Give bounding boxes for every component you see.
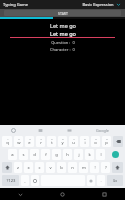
staticText: . xyxy=(100,178,102,184)
staticText: u xyxy=(72,140,75,146)
staticText: n xyxy=(71,165,74,171)
button[interactable]: ! xyxy=(90,162,99,173)
staticText: f xyxy=(45,152,47,158)
button[interactable]: Shift xyxy=(2,162,12,173)
button[interactable]: j xyxy=(74,149,83,160)
button[interactable]: 0 xyxy=(102,136,111,147)
staticText: 0 xyxy=(106,137,108,140)
button[interactable]: Google xyxy=(84,125,121,135)
button[interactable]: Basic Expression xyxy=(81,2,122,7)
button[interactable]: v xyxy=(46,162,55,173)
staticText: k xyxy=(88,152,91,158)
other: Choose mode xyxy=(116,2,121,7)
staticText: Go xyxy=(113,179,117,183)
button[interactable]: Enter xyxy=(107,149,123,160)
staticText: 3 xyxy=(29,137,31,140)
staticText: 8 xyxy=(84,137,86,140)
staticText: t xyxy=(51,140,53,146)
staticText: START xyxy=(58,11,68,16)
staticText: p xyxy=(105,140,108,146)
button[interactable]: Go xyxy=(107,175,123,186)
button[interactable]: 1 xyxy=(2,136,12,147)
staticText: w xyxy=(17,140,21,146)
staticText: Basic Expression xyxy=(82,2,114,7)
button[interactable]: Let me go xyxy=(10,29,115,38)
button[interactable]: c xyxy=(35,162,44,173)
staticText: y xyxy=(61,140,64,146)
button[interactable]: START xyxy=(4,10,121,16)
staticText: s xyxy=(22,152,25,158)
staticText: l xyxy=(100,152,102,158)
staticText: 2 xyxy=(18,137,20,140)
button[interactable]: n xyxy=(68,162,77,173)
button[interactable]: 6 xyxy=(58,136,67,147)
button[interactable]: Recent apps xyxy=(83,188,125,200)
button[interactable]: Home xyxy=(41,188,83,200)
button[interactable]: 5 xyxy=(47,136,56,147)
button[interactable]: a xyxy=(8,149,17,160)
staticText: x xyxy=(27,165,30,171)
staticText: h xyxy=(66,152,69,158)
button[interactable]: 8 xyxy=(80,136,89,147)
staticText: ? xyxy=(105,165,107,171)
button[interactable]: 7 xyxy=(69,136,78,147)
button[interactable]: Google search xyxy=(0,125,26,135)
staticText: 5 xyxy=(51,137,53,140)
staticText: i xyxy=(84,140,86,146)
staticText: Let me go xyxy=(50,30,76,37)
staticText: m xyxy=(82,165,86,171)
button[interactable]: Back xyxy=(0,188,41,200)
button[interactable]: g xyxy=(52,149,61,160)
staticText: c xyxy=(38,165,41,171)
button[interactable]: Sticker xyxy=(26,125,55,135)
button[interactable]: 9 xyxy=(91,136,100,147)
staticText: v xyxy=(49,165,52,171)
staticText: , xyxy=(24,178,26,184)
staticText: a xyxy=(11,152,14,158)
staticText: 1 xyxy=(7,137,9,140)
staticText: ?123 xyxy=(6,178,16,184)
staticText: Google xyxy=(96,128,109,133)
button[interactable]: x xyxy=(24,162,33,173)
button[interactable]: , xyxy=(21,175,29,186)
button[interactable]: z xyxy=(14,162,22,173)
staticText: e xyxy=(28,140,31,146)
staticText: j xyxy=(78,152,80,158)
staticText: Question : 0 xyxy=(51,40,75,45)
staticText: r xyxy=(40,140,42,146)
staticText: o xyxy=(94,140,97,146)
button[interactable]: 3 xyxy=(25,136,34,147)
button[interactable]: l xyxy=(96,149,105,160)
staticText: 4 xyxy=(40,137,42,140)
button[interactable]: ? xyxy=(101,162,110,173)
button[interactable]: 2 xyxy=(14,136,23,147)
staticText: q xyxy=(6,140,9,146)
button[interactable]: k xyxy=(85,149,94,160)
staticText: b xyxy=(60,165,63,171)
button[interactable]: s xyxy=(19,149,28,160)
button[interactable]: GIF xyxy=(55,125,84,135)
staticText: z xyxy=(17,165,19,171)
staticText: 7 xyxy=(73,137,75,140)
staticText: d xyxy=(33,152,36,158)
button[interactable]: Voice input xyxy=(87,175,95,186)
staticText: g xyxy=(55,152,58,158)
staticText: ! xyxy=(94,165,96,171)
button[interactable]: Shift xyxy=(112,162,123,173)
button[interactable]: ?123 xyxy=(2,175,19,186)
button[interactable]: Backspace xyxy=(113,136,123,147)
staticText: Typing Game xyxy=(3,2,28,7)
button[interactable]: Emoji xyxy=(31,175,39,186)
staticText: 6 xyxy=(62,137,64,140)
staticText: 9 xyxy=(95,137,97,140)
button[interactable]: d xyxy=(30,149,39,160)
button[interactable]: f xyxy=(41,149,50,160)
button[interactable]: 4 xyxy=(36,136,45,147)
button[interactable]: b xyxy=(57,162,66,173)
button[interactable]: h xyxy=(63,149,72,160)
staticText: Let me go xyxy=(50,22,76,29)
button[interactable]: m xyxy=(79,162,88,173)
staticText: Character : 0 xyxy=(50,47,75,52)
